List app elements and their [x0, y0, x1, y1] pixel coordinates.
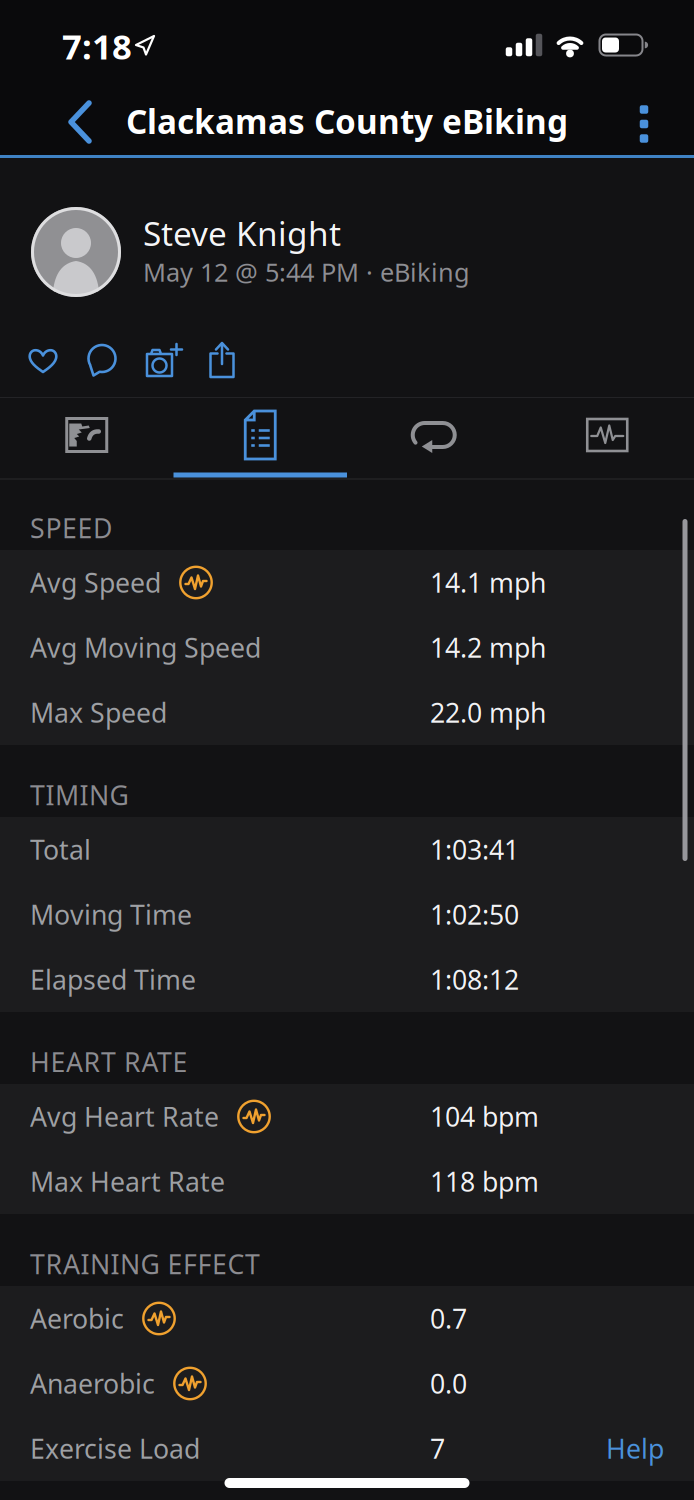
staticText: 22.0 mph — [430, 695, 546, 730]
button[interactable]: Charts — [520, 398, 694, 472]
staticText: 1:08:12 — [430, 962, 519, 997]
staticText: 0.7 — [430, 1301, 467, 1336]
staticText: HEART RATE — [30, 1044, 187, 1079]
staticText: Avg Moving Speed — [30, 630, 261, 665]
staticText: 14.1 mph — [430, 565, 546, 600]
button[interactable]: Comment — [75, 334, 129, 388]
staticText: May 12 @ 5:44 PM · eBiking — [143, 255, 470, 289]
staticText: SPEED — [30, 510, 112, 545]
staticText: 1:03:41 — [430, 832, 519, 867]
staticText: 1:02:50 — [430, 897, 519, 932]
button[interactable]: More options — [620, 93, 668, 155]
staticText: 14.2 mph — [430, 630, 546, 665]
staticText: Total — [30, 832, 91, 867]
staticText: Steve Knight — [143, 211, 341, 255]
button[interactable]: Snapshot — [0, 398, 173, 472]
staticText: 7 — [430, 1431, 445, 1466]
staticText: Exercise Load — [30, 1431, 200, 1466]
button[interactable]: Help — [606, 1431, 664, 1466]
button[interactable]: Laps — [347, 398, 520, 472]
button[interactable]: Stats — [173, 398, 347, 472]
staticText: TIMING — [30, 777, 128, 812]
staticText: Clackamas County eBiking — [126, 99, 568, 143]
staticText: Moving Time — [30, 897, 192, 932]
button[interactable]: Share — [197, 333, 247, 387]
staticText: Elapsed Time — [30, 962, 196, 997]
staticText: TRAINING EFFECT — [30, 1246, 260, 1281]
staticText: Avg Heart Rate — [30, 1099, 219, 1134]
staticText: Aerobic — [30, 1301, 124, 1336]
button[interactable]: Like — [16, 334, 70, 388]
staticText: Max Speed — [30, 695, 167, 730]
staticText: 0.0 — [430, 1366, 467, 1401]
button[interactable]: Add photo — [135, 334, 191, 388]
staticText: Help — [606, 1431, 664, 1466]
button[interactable]: Back — [52, 91, 108, 153]
staticText: Anaerobic — [30, 1366, 155, 1401]
staticText: 7:18 — [62, 23, 132, 69]
staticText: 118 bpm — [430, 1164, 539, 1199]
staticText: Max Heart Rate — [30, 1164, 225, 1199]
staticText: 104 bpm — [430, 1099, 539, 1134]
staticText: Avg Speed — [30, 565, 161, 600]
